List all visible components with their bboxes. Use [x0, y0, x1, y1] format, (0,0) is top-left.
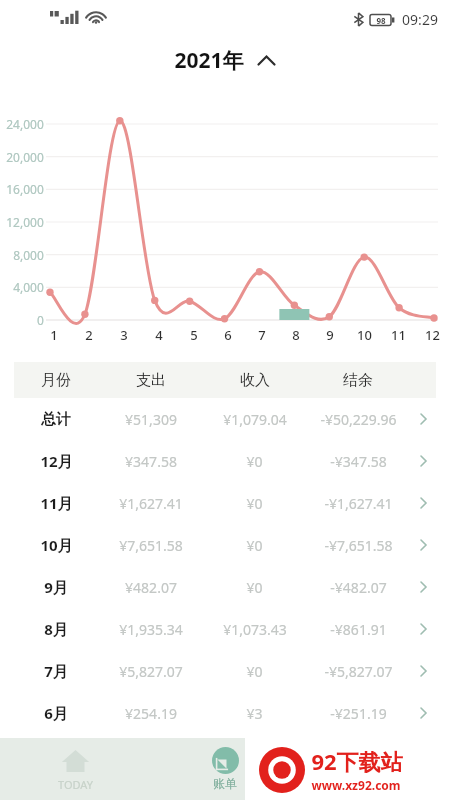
staticText: -¥7,651.58: [324, 536, 393, 555]
staticText: 8,000: [13, 247, 44, 263]
staticText: -¥5,827.07: [324, 662, 393, 681]
staticText: ¥0: [246, 662, 263, 681]
staticText: ¥51,309: [125, 410, 177, 429]
staticText: 12,000: [6, 214, 44, 230]
staticText: ¥5,827.07: [119, 662, 183, 681]
staticText: 20,000: [6, 149, 44, 165]
button[interactable]: Home: [0, 738, 150, 800]
staticText: 9月: [44, 577, 68, 597]
staticText: 月份: [41, 371, 71, 390]
staticText: 6: [224, 326, 232, 344]
staticText: 10: [357, 326, 372, 344]
staticText: -¥347.58: [330, 452, 387, 471]
staticText: 支出: [136, 371, 166, 390]
staticText: 4,000: [13, 279, 44, 295]
staticText: ¥0: [246, 536, 263, 555]
staticText: 1: [50, 326, 58, 344]
other: 账单: [212, 747, 239, 774]
staticText: ¥1,935.34: [119, 620, 183, 639]
staticText: -¥251.19: [330, 704, 387, 723]
staticText: ¥1,073.43: [223, 620, 287, 639]
staticText: 0: [37, 312, 44, 328]
staticText: www.xz92.com: [311, 777, 401, 793]
staticText: 09:29: [402, 10, 438, 29]
button[interactable]: 6月: [14, 692, 436, 734]
staticText: ¥482.07: [125, 578, 177, 597]
staticText: ¥7,651.58: [119, 536, 183, 555]
staticText: 10月: [40, 535, 73, 555]
staticText: 5: [190, 326, 198, 344]
button[interactable]: 2021年: [164, 42, 286, 79]
staticText: 3: [120, 326, 128, 344]
staticText: 92下载站: [311, 746, 403, 776]
button[interactable]: 账单: [150, 738, 300, 800]
staticText: 11: [391, 326, 406, 344]
staticText: 12月: [40, 451, 73, 471]
staticText: 4: [155, 326, 163, 344]
staticText: 6月: [44, 703, 68, 723]
staticText: 收入: [240, 371, 270, 390]
other: Home: [61, 746, 90, 775]
staticText: ¥1,627.41: [119, 494, 183, 513]
staticText: -¥50,229.96: [320, 410, 397, 429]
staticText: 16,000: [6, 181, 44, 197]
staticText: TODAY: [58, 777, 93, 792]
staticText: ¥0: [246, 578, 263, 597]
staticText: -¥1,627.41: [324, 494, 393, 513]
staticText: 24,000: [6, 116, 44, 132]
staticText: 8: [292, 326, 300, 344]
staticText: 98: [376, 15, 386, 26]
staticText: -¥861.91: [330, 620, 387, 639]
button[interactable]: 总计: [14, 398, 436, 440]
button[interactable]: 11月: [14, 482, 436, 524]
staticText: 12: [425, 326, 440, 344]
staticText: ¥0: [246, 494, 263, 513]
button[interactable]: 9月: [14, 566, 436, 608]
staticText: ¥254.19: [125, 704, 177, 723]
button[interactable]: 7月: [14, 650, 436, 692]
staticText: 2021年: [174, 46, 244, 75]
staticText: 7月: [44, 661, 68, 681]
staticText: 9: [326, 326, 334, 344]
staticText: 账单: [213, 776, 237, 791]
staticText: -¥482.07: [330, 578, 387, 597]
staticText: 结余: [343, 371, 373, 390]
button[interactable]: 12月: [14, 440, 436, 482]
staticText: 8月: [44, 619, 68, 639]
button[interactable]: 10月: [14, 524, 436, 566]
staticText: 11月: [40, 493, 73, 513]
staticText: 2: [85, 326, 93, 344]
button[interactable]: 8月: [14, 608, 436, 650]
staticText: ¥0: [246, 452, 263, 471]
staticText: ¥3: [246, 704, 263, 723]
staticText: 总计: [41, 410, 71, 429]
staticText: ¥1,079.04: [223, 410, 287, 429]
staticText: ¥347.58: [125, 452, 177, 471]
staticText: 7: [258, 326, 266, 344]
